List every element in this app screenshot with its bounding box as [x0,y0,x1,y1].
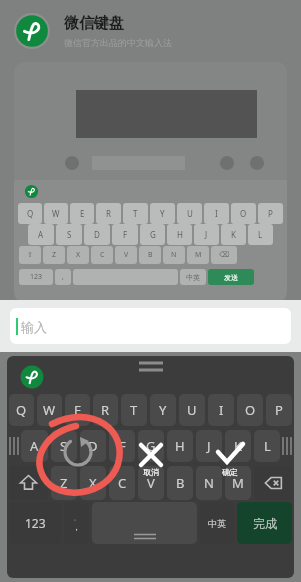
staticText: ⌫ [219,251,229,259]
staticText: 123 [25,515,46,531]
button[interactable]: S [51,430,77,462]
button[interactable]: Shift [9,466,48,500]
staticText: E [80,208,85,219]
button[interactable]: H [167,430,193,462]
button[interactable]: 完成 [237,502,292,544]
staticText: S [67,229,72,240]
staticText: 输入 [21,319,47,335]
staticText: 微信官方出品的中文输入法 [64,37,172,48]
staticText: N [204,474,214,492]
staticText: C [118,474,127,492]
staticText: 完成 [253,516,277,531]
staticText: 确定 [222,467,238,477]
staticText: W [43,401,56,419]
staticText: Z [60,474,68,492]
staticText: F [123,229,128,240]
staticText: I [219,401,224,419]
staticText: O [245,401,256,419]
button[interactable]: F [109,430,135,462]
staticText: H [177,229,183,240]
staticText: X [76,250,81,260]
staticText: M [195,250,202,260]
staticText: 中英 [208,518,226,529]
button[interactable]: T [121,394,147,426]
staticText: U [187,208,193,219]
staticText: J [207,437,211,455]
staticText: Q [27,208,34,219]
staticText: F [119,437,126,455]
button[interactable]: A [21,430,48,462]
staticText: J [205,229,208,240]
staticText: C [100,250,105,260]
staticText: 微信键盘 [64,14,124,33]
button[interactable]: 确定 [215,465,245,479]
button[interactable]: 中英切换 [200,502,234,544]
button[interactable]: 123 [9,502,61,544]
button[interactable]: P [266,394,292,426]
staticText: B [176,474,185,492]
staticText: X [89,474,97,492]
button[interactable]: X [80,466,106,500]
button[interactable]: M [225,466,251,500]
button[interactable]: Backspace [254,466,292,500]
button[interactable]: Q [9,394,34,426]
staticText: V [147,474,155,492]
staticText: B [148,250,153,260]
staticText: Y [159,401,167,419]
staticText: Q [16,401,27,419]
button[interactable]: W [37,394,62,426]
staticText: Y [160,208,165,219]
button[interactable]: C [109,466,135,500]
staticText: R [106,208,111,219]
staticText: E [74,401,82,419]
staticText: L [258,229,263,240]
button[interactable]: R [93,394,118,426]
button[interactable]: K [225,430,251,462]
staticText: U [187,401,197,419]
staticText: O [240,208,247,219]
button[interactable]: N [196,466,222,500]
staticText: L [264,437,271,455]
staticText: T [133,208,138,219]
button[interactable]: 取消 [136,465,166,479]
button[interactable]: Y [150,394,176,426]
staticText: , [62,272,64,282]
staticText: K [234,437,243,455]
staticText: 取消 [143,467,159,477]
staticText: Z [52,250,57,260]
staticText: 发送 [224,273,238,282]
button[interactable]: Space [92,502,197,544]
button[interactable]: Z [51,466,77,500]
button[interactable]: I [208,394,234,426]
staticText: ， [72,521,81,532]
button[interactable]: J [196,430,222,462]
staticText: T [130,401,138,419]
staticText: M [232,474,244,492]
button[interactable]: O [237,394,263,426]
staticText: A [38,229,44,240]
button[interactable]: 。 [64,502,89,544]
button[interactable]: V [138,466,164,500]
staticText: G [146,437,156,455]
button[interactable]: D [80,430,106,462]
staticText: 123 [30,272,43,282]
staticText: ⇧ [27,251,33,259]
staticText: R [101,401,110,419]
button[interactable]: U [179,394,205,426]
staticText: I [215,208,218,219]
staticText: K [231,229,236,240]
button[interactable]: B [167,466,193,500]
button[interactable]: E [65,394,90,426]
staticText: S [60,437,68,455]
staticText: A [30,437,39,455]
staticText: N [171,250,177,260]
staticText: H [175,437,185,455]
staticText: 。 [74,515,79,521]
button[interactable]: 输入 [10,308,291,344]
staticText: G [150,229,156,240]
staticText: D [88,437,98,455]
button[interactable]: G [138,430,164,462]
button[interactable]: L [254,430,280,462]
staticText: D [94,229,100,240]
staticText: W [52,208,60,219]
